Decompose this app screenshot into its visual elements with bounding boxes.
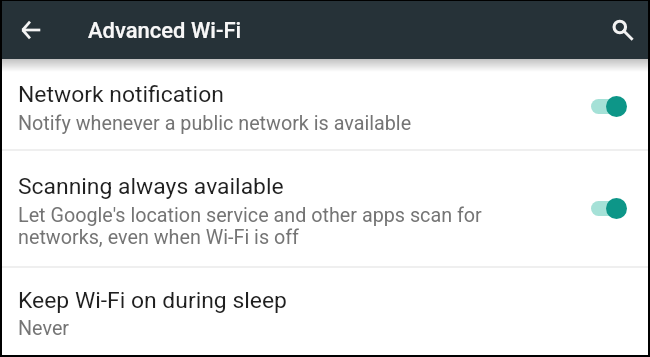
- button[interactable]: Search: [588, 6, 636, 54]
- staticText: Scanning always available: [18, 173, 284, 200]
- staticText: Never: [18, 317, 70, 340]
- button[interactable]: Keep Wi-Fi on during sleep: [2, 268, 648, 354]
- button[interactable]: Scanning always available: [2, 151, 648, 266]
- staticText: Notify whenever a public network is avai…: [18, 112, 412, 135]
- button[interactable]: Network notification: [2, 59, 648, 149]
- staticText: Let Google's location service and other …: [18, 204, 482, 249]
- staticText: Network notification: [18, 81, 224, 108]
- button[interactable]: Toggle Network notification: [589, 95, 631, 117]
- button[interactable]: Back: [8, 7, 53, 53]
- staticText: Keep Wi-Fi on during sleep: [18, 287, 287, 314]
- button[interactable]: Toggle Scanning always available: [589, 197, 631, 219]
- staticText: Advanced Wi-Fi: [88, 18, 242, 44]
